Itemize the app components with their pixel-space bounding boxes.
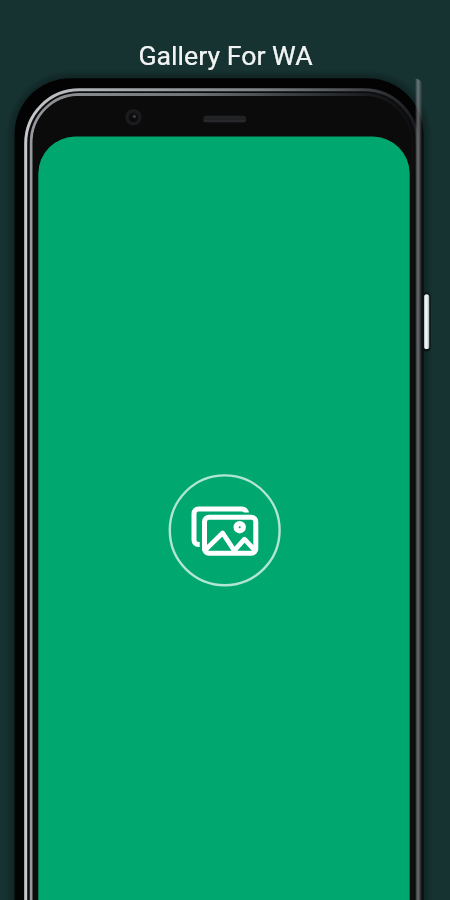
- button[interactable]: Gallery: [170, 476, 279, 585]
- staticText: Gallery For WA: [138, 40, 313, 71]
